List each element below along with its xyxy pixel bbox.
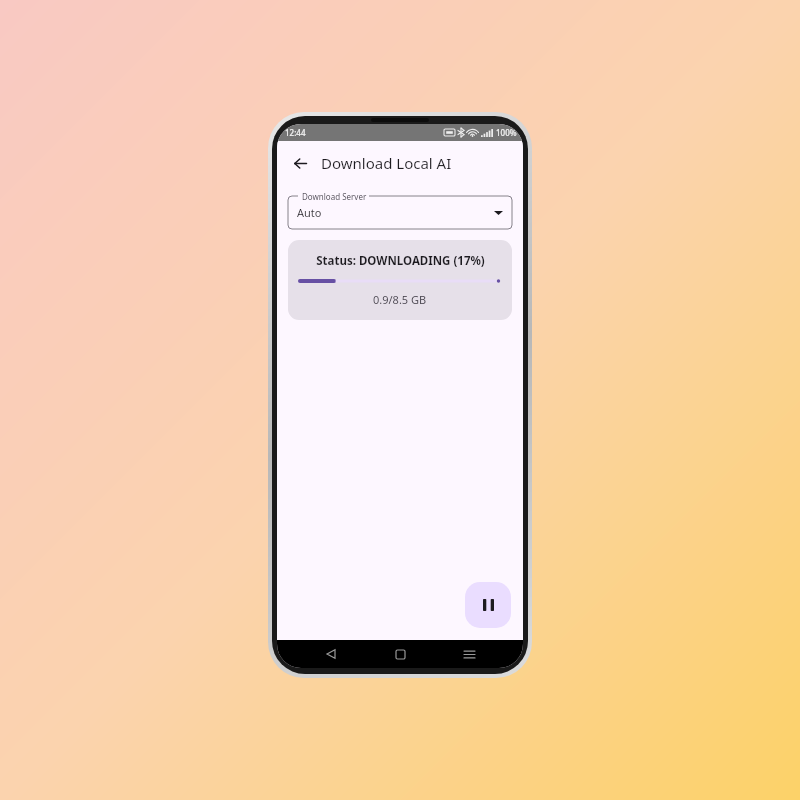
- staticText: Auto: [297, 205, 322, 220]
- button[interactable]: Back: [316, 640, 346, 668]
- staticText: 100%: [496, 127, 517, 138]
- staticText: Download Local AI: [321, 153, 452, 173]
- staticText: 0.9/8.5 GB: [373, 292, 427, 307]
- button[interactable]: Pause download: [465, 582, 511, 628]
- staticText: 12:44: [285, 127, 306, 138]
- button[interactable]: Home: [385, 640, 415, 668]
- button[interactable]: Status: DOWNLOADING (17%): [288, 240, 512, 320]
- staticText: Status: DOWNLOADING (17%): [316, 253, 485, 269]
- button[interactable]: Back: [287, 150, 313, 176]
- button[interactable]: Recent apps: [454, 640, 484, 668]
- button[interactable]: Auto: [288, 191, 512, 229]
- staticText: Download Server: [302, 191, 367, 202]
